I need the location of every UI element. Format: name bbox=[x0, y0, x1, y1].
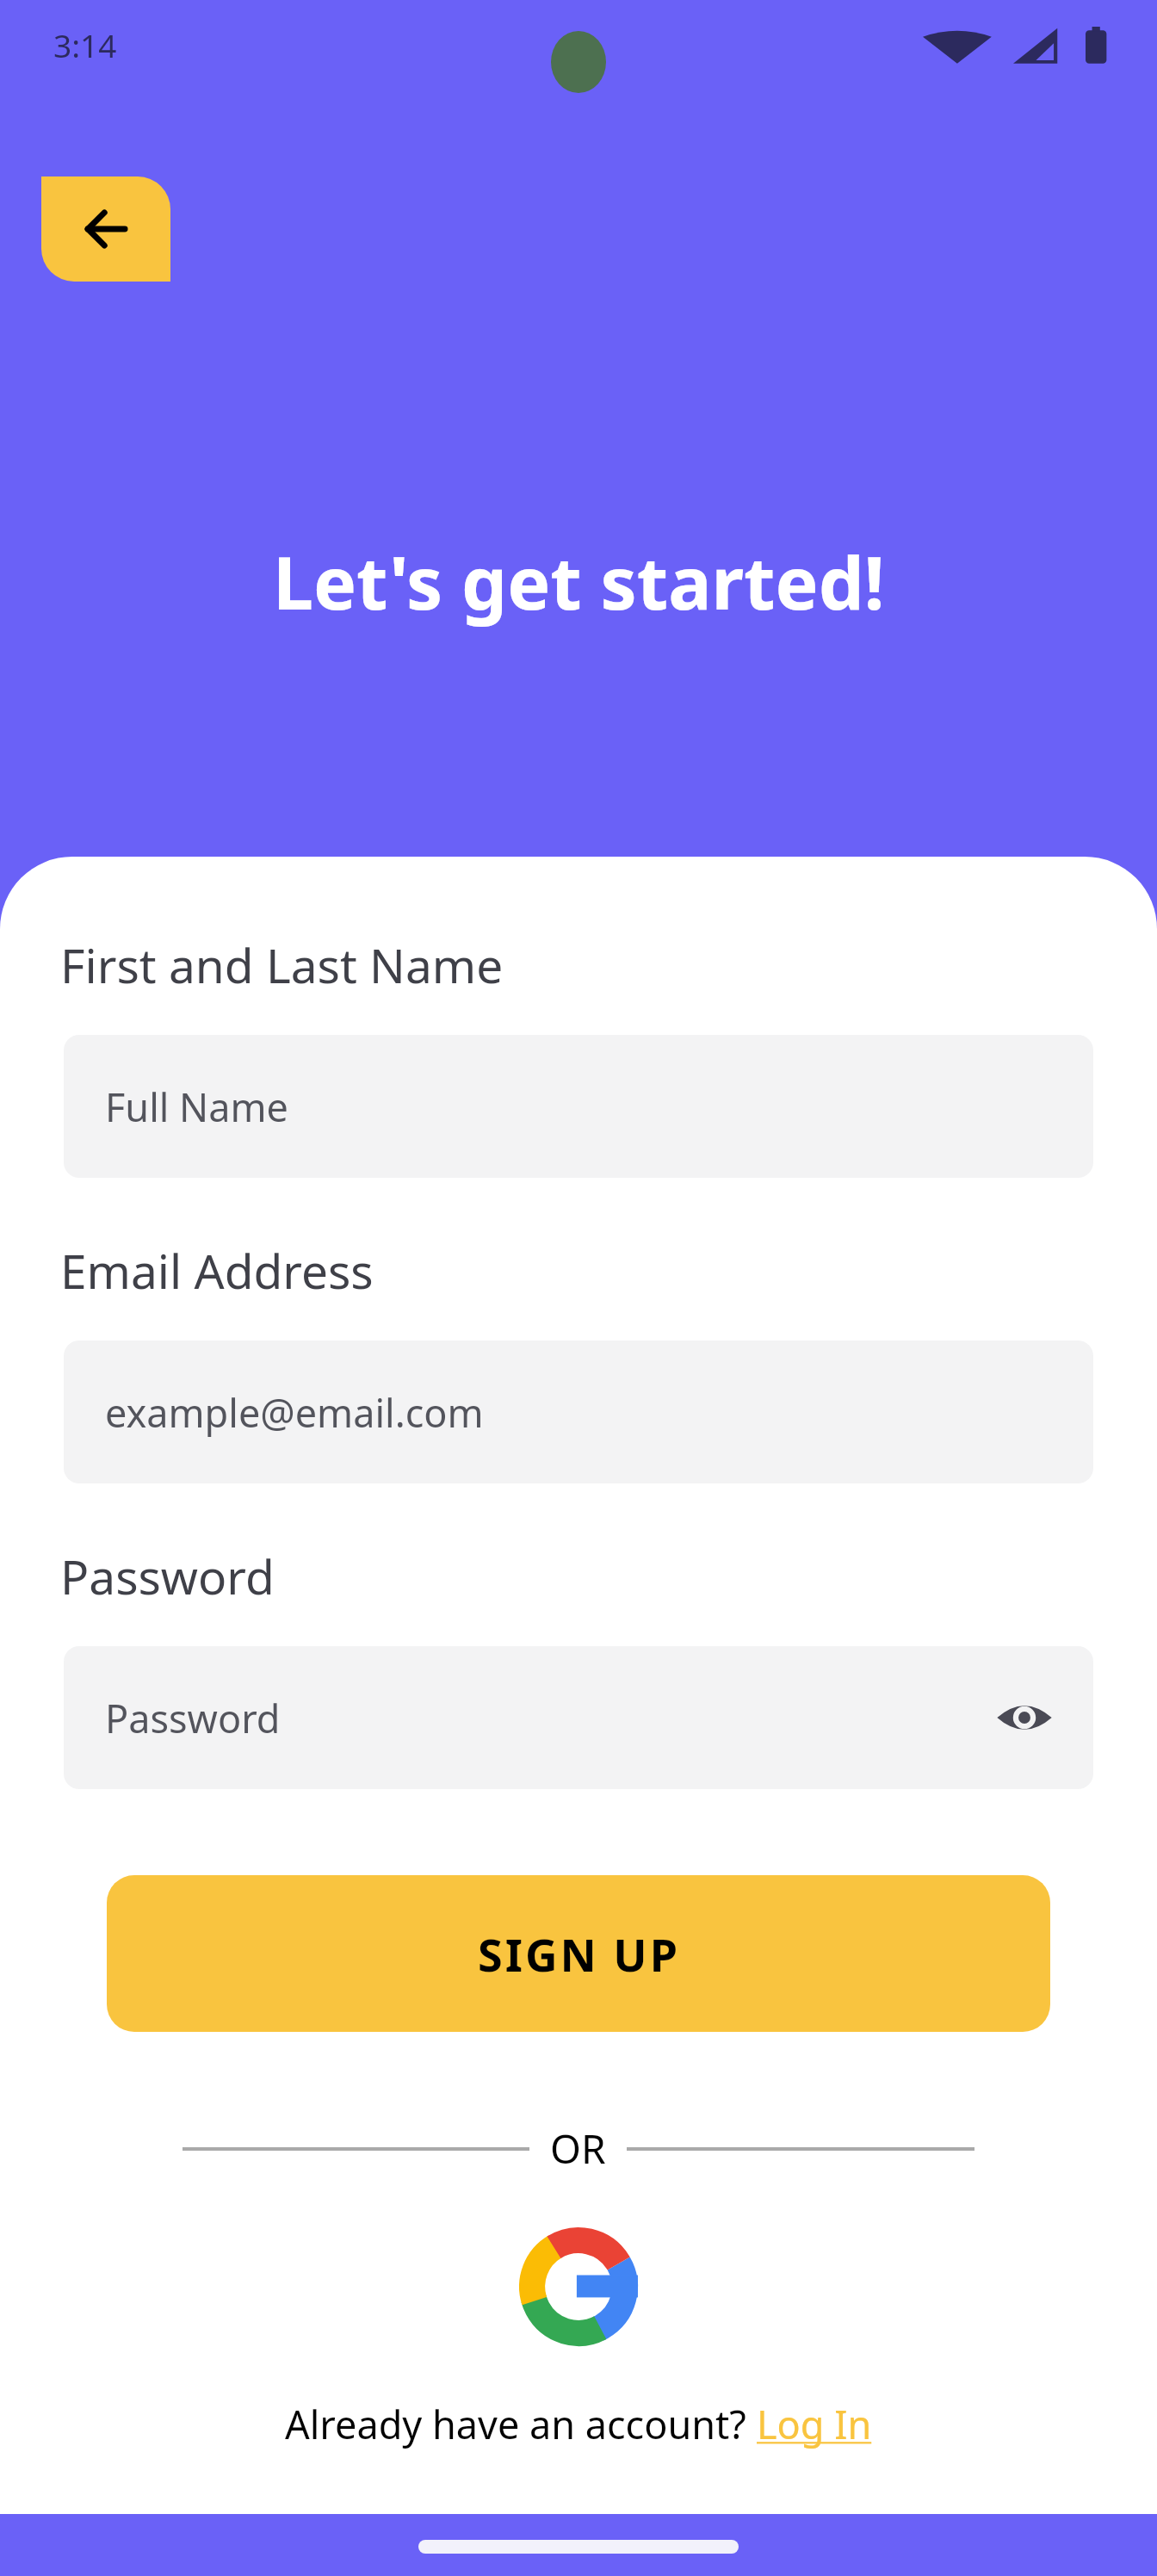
staticText: Log In bbox=[757, 2398, 872, 2450]
staticText: First and Last Name bbox=[60, 932, 504, 997]
button[interactable]: Already have an account? bbox=[285, 2398, 872, 2450]
staticText: example@email.com bbox=[105, 1386, 484, 1439]
button[interactable]: Password bbox=[64, 1646, 1093, 1789]
staticText: Password bbox=[105, 1692, 281, 1744]
staticText: Let's get started! bbox=[273, 532, 885, 630]
staticText: OR bbox=[550, 2121, 606, 2176]
staticText: 3:14 bbox=[53, 23, 117, 66]
staticText: Password bbox=[60, 1544, 275, 1608]
button[interactable]: example@email.com bbox=[64, 1341, 1093, 1483]
button[interactable]: Sign up with Google bbox=[514, 2222, 643, 2351]
staticText: Full Name bbox=[105, 1081, 288, 1133]
staticText: SIGN UP bbox=[478, 1923, 680, 1985]
staticText: Already have an account? bbox=[285, 2398, 757, 2450]
button[interactable]: Show password bbox=[990, 1683, 1059, 1752]
staticText: Email Address bbox=[60, 1238, 374, 1303]
button[interactable]: Back bbox=[41, 176, 170, 282]
button[interactable]: Full Name bbox=[64, 1035, 1093, 1178]
button[interactable]: SIGN UP bbox=[107, 1875, 1050, 2032]
